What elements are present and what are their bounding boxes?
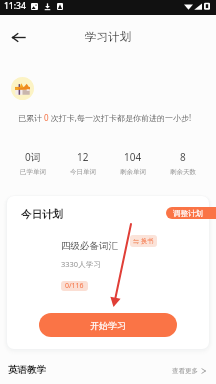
staticText: 已累计 0 次打卡,每一次打卡都是你前进的一小步! [18, 112, 192, 123]
button[interactable]: Back [6, 25, 30, 49]
staticText: 英语教学 [8, 364, 46, 376]
staticText: 四级必备词汇 [61, 240, 118, 252]
button[interactable]: 开始学习 [39, 313, 177, 337]
staticText: 换书 [141, 237, 154, 245]
button[interactable]: 查看更多 [172, 364, 207, 378]
staticText: 剩余天数 [170, 168, 196, 176]
button[interactable]: 调整计划 [166, 207, 216, 219]
staticText: 已学单词 [20, 168, 46, 176]
staticText: 调整计划 [173, 209, 203, 218]
staticText: 学习计划 [85, 30, 131, 44]
button[interactable]: 104 [108, 150, 158, 176]
staticText: 今日单词 [70, 168, 96, 176]
button[interactable]: 0词 [8, 150, 58, 176]
button[interactable]: 换书 [130, 235, 157, 247]
staticText: 12 [77, 150, 89, 164]
staticText: 开始学习 [90, 320, 126, 331]
button[interactable]: 8 [158, 150, 208, 176]
staticText: 剩余单词 [120, 168, 146, 176]
button[interactable]: 12 [58, 150, 108, 176]
staticText: 0/116 [65, 281, 84, 291]
staticText: 3330人学习 [61, 259, 101, 269]
staticText: 8 [180, 150, 186, 164]
staticText: 11:34 [4, 0, 26, 12]
staticText: 104 [124, 150, 142, 164]
staticText: 查看更多 [172, 367, 198, 375]
staticText: 0词 [25, 150, 41, 164]
staticText: 今日计划 [21, 208, 63, 221]
